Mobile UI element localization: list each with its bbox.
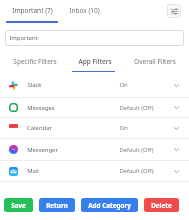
button[interactable]: Important (5, 30, 184, 46)
staticText: Messenger (27, 146, 58, 154)
staticText: Return (46, 201, 68, 210)
staticText: Default (Off) (119, 167, 154, 175)
staticText: Mail (27, 167, 39, 175)
staticText: Default (Off) (119, 104, 154, 112)
staticText: Slack (27, 81, 42, 89)
button[interactable]: Delete (144, 198, 179, 212)
staticText: Default (Off) (119, 146, 154, 154)
button[interactable]: Add Category (81, 198, 138, 212)
staticText: Delete (151, 201, 172, 210)
staticText: Messages (27, 104, 55, 112)
staticText: Specific Filters (13, 57, 57, 66)
button[interactable]: Messages (0, 98, 189, 117)
button[interactable]: Mail (0, 161, 189, 181)
staticText: Calendar (27, 124, 52, 132)
button[interactable]: Specific Filters (4, 52, 65, 70)
staticText: Save (11, 201, 26, 210)
button[interactable]: Calendar (0, 118, 189, 138)
staticText: On (119, 124, 128, 132)
button[interactable]: Messenger (0, 139, 189, 160)
staticText: Important (7) (12, 6, 53, 15)
staticText: Add Category (88, 201, 131, 210)
button[interactable]: App Filters (65, 52, 125, 70)
button[interactable]: Filter settings (167, 4, 181, 18)
button[interactable]: Slack (0, 73, 189, 97)
staticText: Inbox (10) (69, 6, 100, 15)
button[interactable]: Overall Filters (125, 52, 185, 70)
staticText: Important (9, 34, 38, 42)
button[interactable]: Return (39, 198, 75, 212)
button[interactable]: Save (4, 198, 33, 212)
staticText: Overall Filters (134, 57, 176, 66)
staticText: App Filters (78, 57, 112, 66)
button[interactable]: Important (7) (6, 0, 58, 21)
button[interactable]: Inbox (10) (58, 0, 110, 21)
staticText: On (119, 81, 128, 89)
